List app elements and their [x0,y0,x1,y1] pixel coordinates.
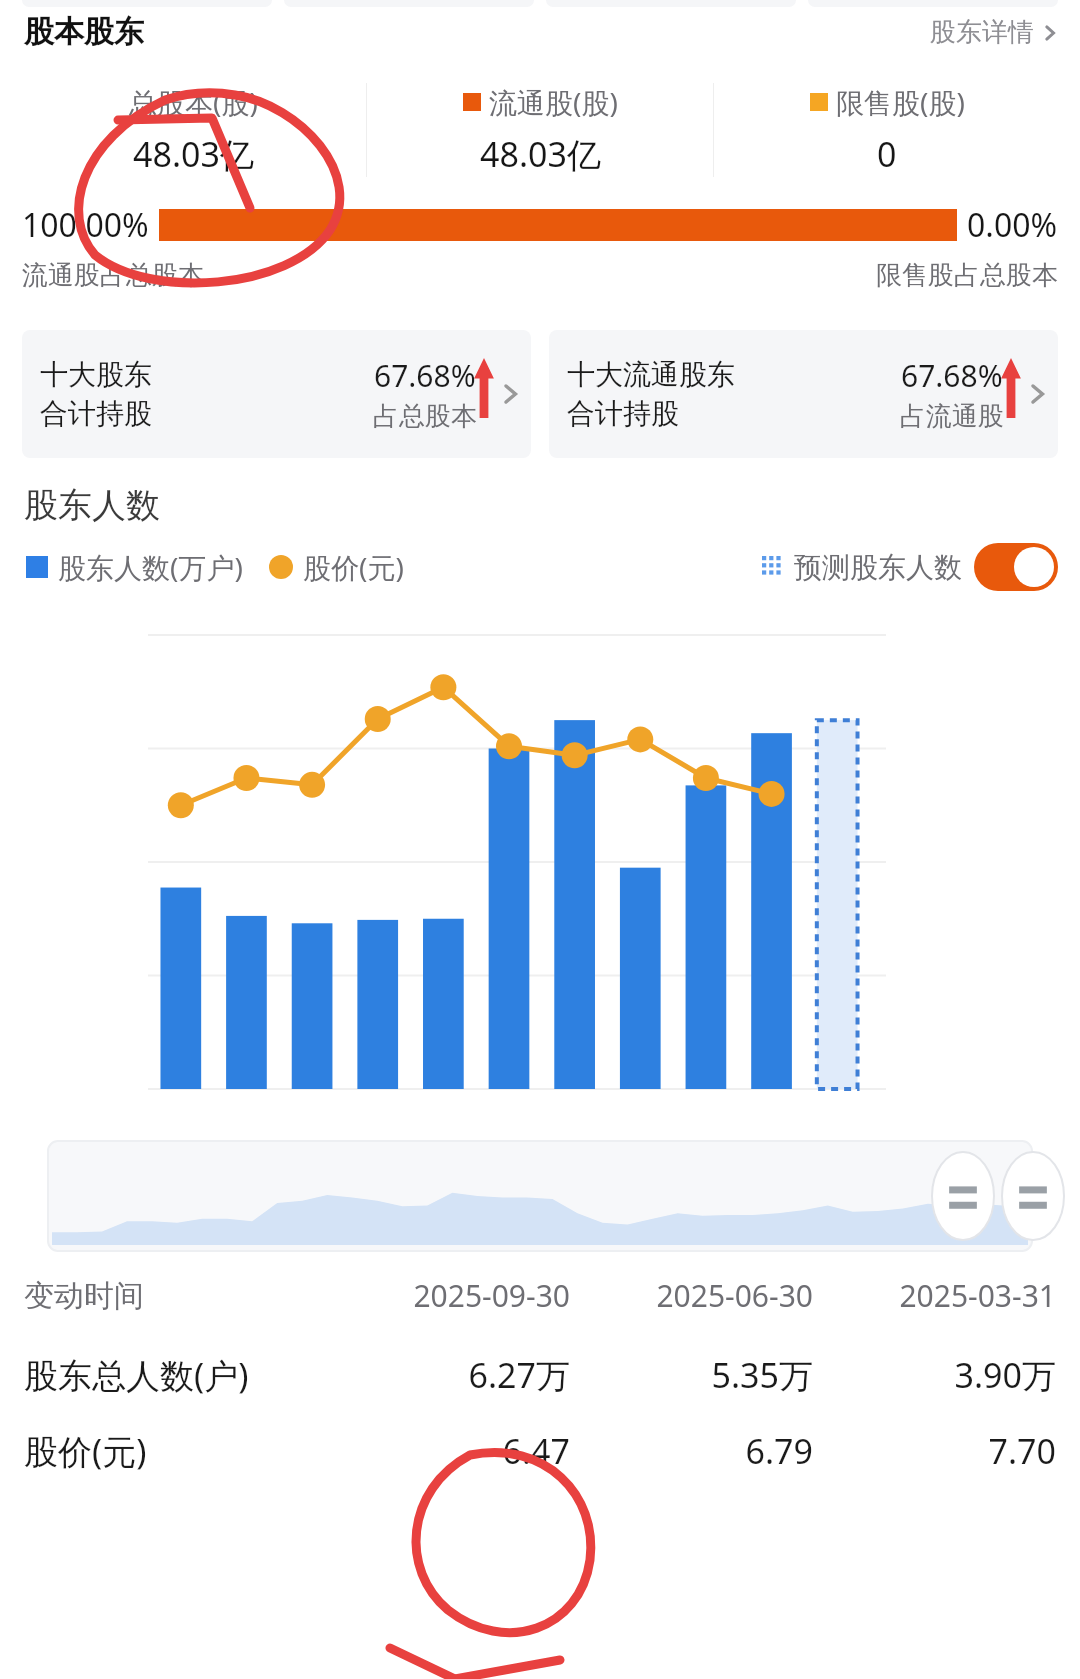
staticText: 占流通股 [900,400,1004,433]
staticText: 48.03亿 [480,131,601,177]
staticText: 股东详情 [930,16,1034,49]
staticText: 股价(元) [24,1428,327,1474]
staticText: 占总股本 [373,400,477,433]
staticText: 股东人数(万户) [58,548,243,586]
button[interactable]: 限售股(股) [714,65,1060,195]
staticText: 流通股占总股本 [22,259,204,292]
staticText: 合计持股 [567,396,679,431]
staticText: 股本股东 [24,13,144,51]
staticText: 48.03亿 [133,131,254,177]
staticText: 股东人数 [24,484,160,527]
staticText: 6.27万 [327,1352,570,1398]
button[interactable]: 预测股东人数 [762,543,1058,591]
staticText: 2025-09-30 [327,1275,570,1316]
button[interactable]: 总股本(股) [20,65,366,195]
staticText: 7.70 [813,1428,1056,1474]
staticText: 100.00% [22,203,149,247]
staticText: 十大流通股东 [567,357,735,392]
button[interactable]: 十大流通股东 [549,330,1058,458]
staticText: 限售股占总股本 [876,259,1058,292]
staticText: 2025-06-30 [570,1275,813,1316]
button[interactable]: 股东详情 [930,16,1058,49]
staticText: 限售股(股) [836,83,965,121]
staticText: 总股本(股) [129,83,258,121]
staticText: 流通股(股) [489,83,618,121]
button[interactable]: 流通股(股) [367,65,713,195]
staticText: 变动时间 [24,1277,327,1315]
staticText: 合计持股 [40,396,152,431]
staticText: 2025-03-31 [813,1275,1056,1316]
staticText: 6.79 [570,1428,813,1474]
staticText: 6.47 [327,1428,570,1474]
staticText: 67.68% [901,355,1003,396]
staticText: 股价(元) [303,548,404,586]
staticText: 0 [877,131,897,177]
staticText: 0.00% [967,203,1058,247]
staticText: 3.90万 [813,1352,1056,1398]
button[interactable]: Range handle [1000,1148,1066,1244]
staticText: 预测股东人数 [794,550,962,585]
button[interactable]: Range handle [930,1148,996,1244]
button[interactable]: 十大股东 [22,330,531,458]
staticText: 67.68% [374,355,476,396]
staticText: 股东总人数(户) [24,1352,327,1398]
staticText: 5.35万 [570,1352,813,1398]
staticText: 十大股东 [40,357,152,392]
